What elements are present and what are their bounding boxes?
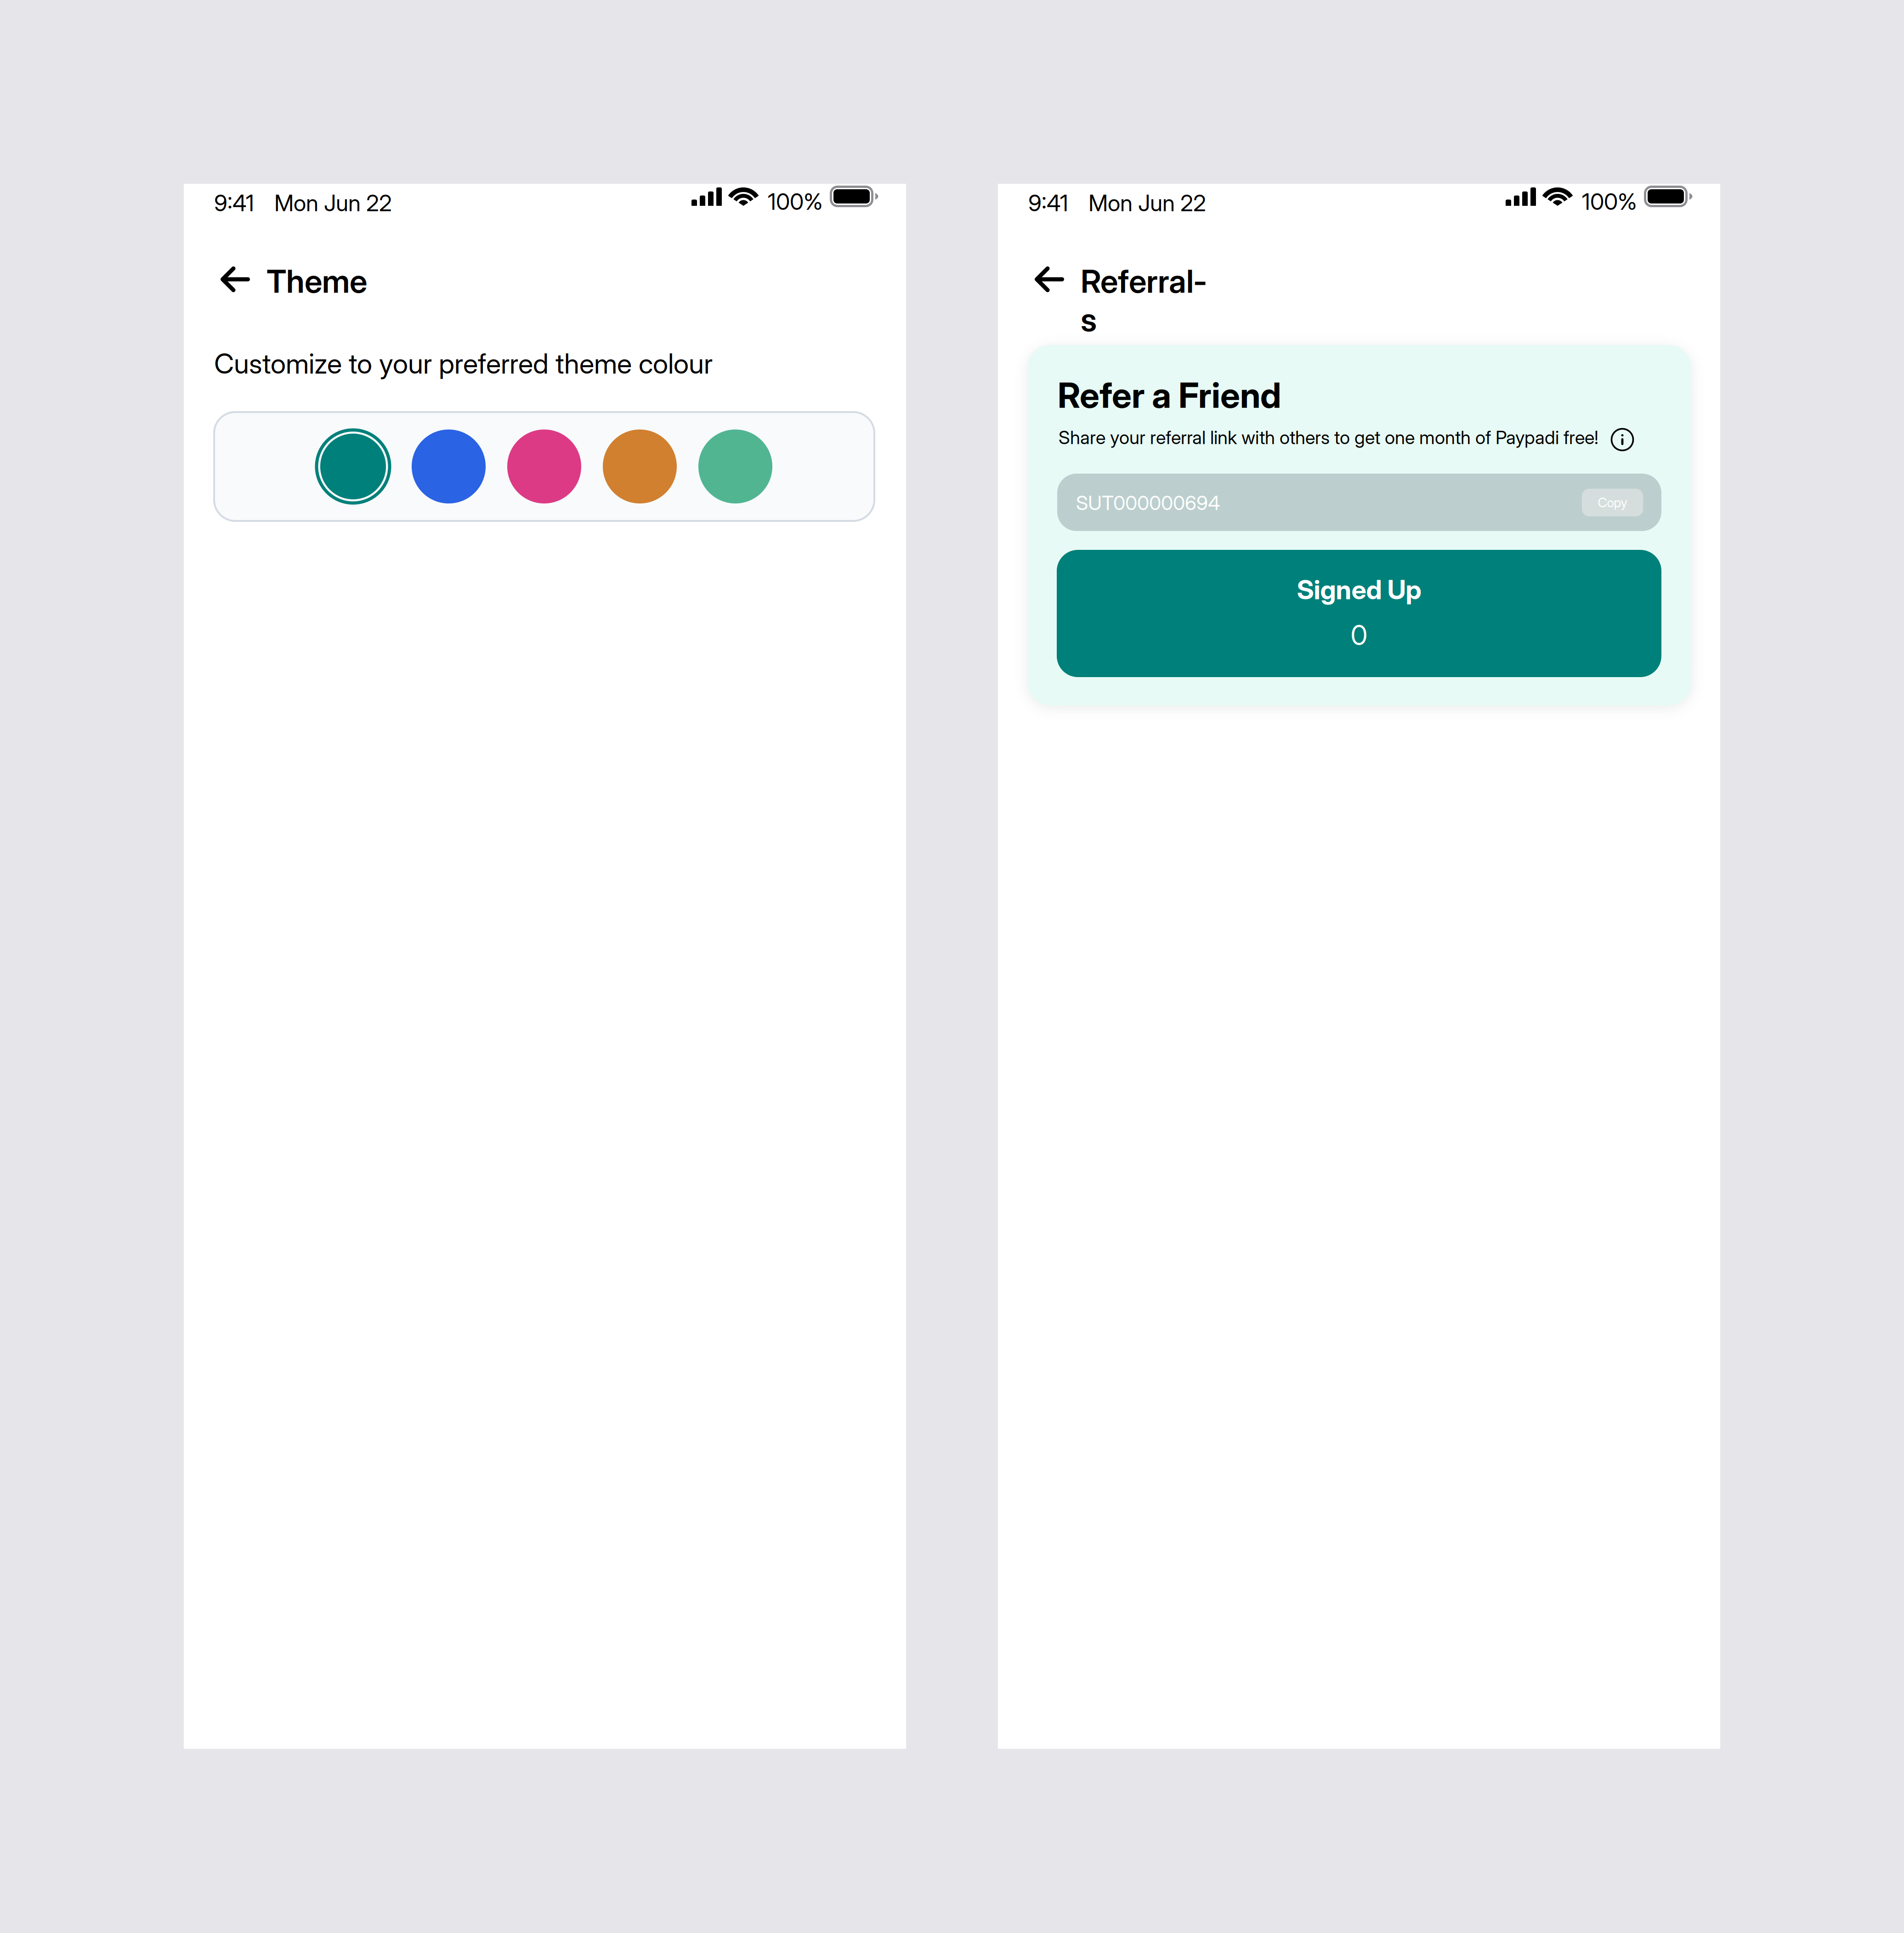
staticText: Referrals xyxy=(1081,262,1206,339)
button[interactable]: Pink theme xyxy=(496,419,592,514)
button[interactable]: Green theme xyxy=(688,419,783,514)
staticText: Mon Jun 22 xyxy=(274,189,392,217)
button[interactable]: Teal theme, selected xyxy=(305,419,401,514)
button[interactable]: Back xyxy=(1018,254,1073,305)
button[interactable]: Back xyxy=(204,254,259,305)
staticText: 100% xyxy=(1582,188,1637,215)
staticText: Signed Up xyxy=(1297,574,1421,606)
button[interactable]: Orange theme xyxy=(592,419,688,514)
staticText: Mon Jun 22 xyxy=(1088,189,1206,217)
staticText: Share your referral link with others to … xyxy=(1059,426,1598,449)
staticText: Refer a Friend xyxy=(1058,374,1281,416)
staticText: 100% xyxy=(768,188,823,215)
button[interactable]: Blue theme xyxy=(401,419,496,514)
staticText: Copy xyxy=(1598,495,1627,510)
staticText: 0 xyxy=(1351,618,1368,652)
staticText: 9:41 xyxy=(1028,189,1068,217)
staticText: Theme xyxy=(266,262,367,300)
staticText: Customize to your preferred theme colour xyxy=(214,347,713,380)
staticText: 9:41 xyxy=(214,189,254,217)
button[interactable]: Signed Up xyxy=(1057,550,1661,677)
button[interactable]: More information xyxy=(1611,428,1634,451)
button[interactable]: Copy xyxy=(1582,489,1643,516)
staticText: SUT000000694 xyxy=(1076,491,1220,515)
